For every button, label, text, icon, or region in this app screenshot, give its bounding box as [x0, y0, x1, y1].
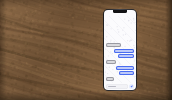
button[interactable]: [114, 49, 134, 53]
button[interactable]: Send: [129, 84, 134, 89]
button[interactable]: [106, 60, 116, 64]
button[interactable]: [106, 77, 114, 81]
button[interactable]: [106, 43, 121, 47]
button[interactable]: [106, 84, 128, 89]
button[interactable]: [119, 71, 134, 75]
button[interactable]: [116, 66, 134, 70]
button[interactable]: [118, 54, 134, 58]
